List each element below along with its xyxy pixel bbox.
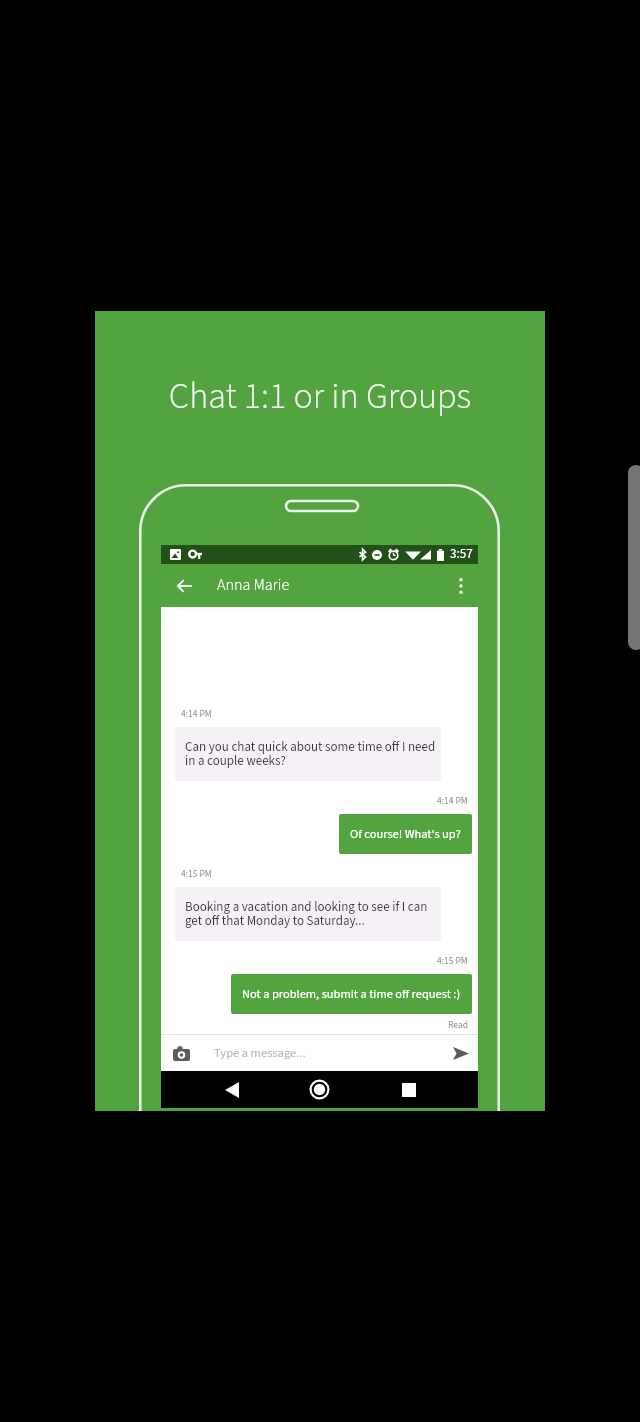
button[interactable]: Home <box>301 1071 338 1108</box>
button[interactable]: Not a problem, submit a time off request… <box>231 974 472 1014</box>
button[interactable]: Back <box>213 1071 250 1108</box>
button[interactable]: Back <box>161 564 207 607</box>
staticText: Not a problem, submit a time off request… <box>242 985 461 1003</box>
staticText: 4:15 PM <box>437 954 468 968</box>
button[interactable]: Recents <box>390 1071 427 1108</box>
staticText: 4:15 PM <box>181 867 212 881</box>
staticText: Booking a vacation and looking to see if… <box>185 898 437 930</box>
button[interactable]: Can you chat quick about some time off I… <box>175 727 441 781</box>
staticText: 3:57 <box>450 545 473 564</box>
staticText: Of course! What's up? <box>350 825 461 843</box>
button[interactable]: Back <box>161 564 478 607</box>
staticText: Read <box>448 1018 468 1032</box>
staticText: 4:14 PM <box>181 707 212 721</box>
button[interactable]: More options <box>444 564 478 607</box>
staticText: Anna Marie <box>217 574 290 597</box>
staticText: Can you chat quick about some time off I… <box>185 738 437 770</box>
button[interactable]: Of course! What's up? <box>339 814 472 854</box>
button[interactable]: Chat 1:1 or in Groups <box>95 311 545 1111</box>
button[interactable]: Send <box>448 1040 474 1066</box>
staticText: Chat 1:1 or in Groups <box>95 371 545 422</box>
button[interactable]: Type a message... <box>161 1035 478 1071</box>
staticText: 4:14 PM <box>437 794 468 808</box>
button[interactable]: Booking a vacation and looking to see if… <box>175 887 441 941</box>
staticText: Type a message... <box>214 1044 306 1062</box>
